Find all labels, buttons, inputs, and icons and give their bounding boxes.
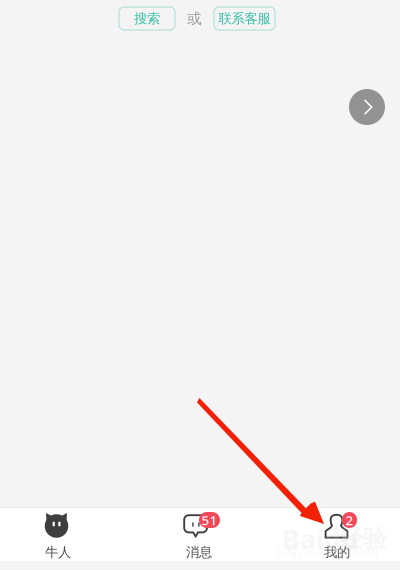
- staticText: 牛人: [45, 544, 71, 560]
- button[interactable]: 消息: [133, 508, 266, 561]
- staticText: 2: [345, 511, 353, 529]
- staticText: 搜索: [134, 10, 160, 27]
- staticText: Baidu: [282, 521, 358, 556]
- staticText: 消息: [186, 544, 212, 560]
- staticText: 或: [187, 9, 202, 27]
- staticText: 我的: [324, 544, 350, 560]
- staticText: 联系客服: [218, 10, 270, 27]
- button[interactable]: 搜索: [119, 7, 175, 30]
- button[interactable]: 我的: [267, 508, 400, 561]
- staticText: 51: [201, 511, 217, 529]
- button[interactable]: 牛人: [0, 508, 133, 561]
- button[interactable]: 联系客服: [214, 7, 275, 30]
- staticText: jingyan.baidu.com: [277, 543, 378, 559]
- staticText: 经验: [339, 524, 387, 553]
- button[interactable]: Next: [349, 89, 385, 125]
